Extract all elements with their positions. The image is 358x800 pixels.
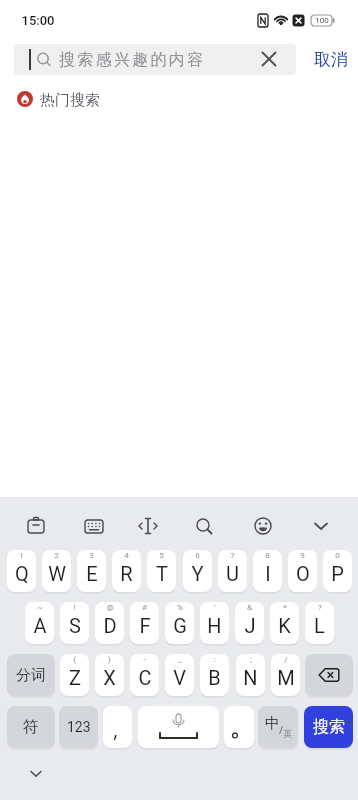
button[interactable] (134, 512, 162, 540)
button[interactable]: 4 (112, 550, 141, 592)
staticText: & (247, 603, 252, 612)
button[interactable] (249, 512, 277, 540)
staticText: ! (73, 603, 76, 612)
button[interactable]: ) (95, 654, 124, 696)
button[interactable] (305, 654, 353, 696)
button[interactable]: 3 (77, 550, 106, 592)
button[interactable]: 5 (147, 550, 176, 592)
button[interactable]: % (165, 602, 194, 644)
staticText: : (214, 655, 216, 664)
button[interactable]: 搜索感兴趣的内容 (14, 44, 296, 75)
staticText: F (139, 614, 151, 637)
staticText: / (284, 655, 288, 664)
button[interactable]: ' (200, 602, 229, 644)
staticText: 搜索感兴趣的内容 (59, 50, 206, 70)
staticText: L (314, 614, 325, 637)
staticText: A (33, 614, 47, 637)
button[interactable]: 9 (288, 550, 317, 592)
staticText: ' (214, 603, 216, 612)
button[interactable]: 取消 (304, 44, 358, 75)
button[interactable]: 中 (258, 706, 298, 748)
staticText: N (243, 666, 258, 689)
button[interactable]: ! (60, 602, 89, 644)
button[interactable] (255, 45, 283, 73)
button[interactable]: 符 (7, 706, 55, 748)
staticText: 1 (19, 551, 24, 560)
staticText: U (226, 562, 239, 585)
staticText: Z (69, 666, 81, 689)
staticText: P (331, 562, 344, 585)
staticText: 123 (67, 719, 91, 735)
staticText: 3 (89, 551, 94, 560)
button[interactable]: / (271, 654, 300, 696)
button[interactable]: 0 (323, 550, 352, 592)
staticText: 9 (300, 551, 305, 560)
staticText: 取消 (314, 49, 348, 70)
staticText: 15:00 (21, 13, 55, 28)
staticText: B (208, 666, 221, 689)
button[interactable]: _ (165, 654, 194, 696)
button[interactable]: # (130, 602, 159, 644)
staticText: _ (178, 655, 182, 664)
button[interactable]: 2 (42, 550, 71, 592)
staticText: / (279, 722, 284, 737)
staticText: Y (191, 562, 204, 585)
staticText: 8 (265, 551, 270, 560)
staticText: 0 (335, 551, 340, 560)
button[interactable]: @ (95, 602, 124, 644)
staticText: 100 (315, 16, 329, 25)
staticText: R (120, 562, 133, 585)
staticText: * (283, 603, 287, 612)
button[interactable] (307, 512, 335, 540)
staticText: 符 (23, 717, 39, 737)
button[interactable] (138, 706, 219, 748)
staticText: S (69, 614, 81, 637)
button[interactable]: 分词 (7, 654, 55, 696)
staticText: M (277, 666, 295, 689)
staticText: G (173, 614, 187, 637)
staticText: I (265, 562, 271, 585)
button[interactable]: 123 (59, 706, 98, 748)
staticText: 英 (283, 728, 292, 739)
staticText: J (244, 614, 256, 637)
staticText: 6 (195, 551, 200, 560)
staticText: ~ (37, 603, 43, 612)
button[interactable]: ? (305, 602, 334, 644)
staticText: 4 (124, 551, 129, 560)
button[interactable]: * (270, 602, 299, 644)
staticText: ) (108, 655, 111, 664)
button[interactable] (80, 512, 108, 540)
button[interactable]: 1 (7, 550, 36, 592)
staticText: O (296, 562, 310, 585)
staticText: ( (73, 655, 76, 664)
staticText: % (177, 603, 183, 612)
staticText: 2 (54, 551, 59, 560)
staticText: , (113, 716, 119, 743)
button[interactable]: 6 (183, 550, 212, 592)
button[interactable]: & (235, 602, 264, 644)
staticText: @ (106, 603, 114, 612)
button[interactable]: 搜索 (304, 706, 353, 748)
staticText: 搜索 (313, 717, 345, 737)
staticText: H (207, 614, 222, 637)
button[interactable] (224, 706, 254, 748)
button[interactable]: ( (60, 654, 89, 696)
button[interactable]: - (130, 654, 159, 696)
button[interactable]: 7 (218, 550, 247, 592)
staticText: 7 (230, 551, 235, 560)
staticText: T (156, 562, 168, 585)
button[interactable] (22, 512, 50, 540)
button[interactable]: : (200, 654, 229, 696)
button[interactable]: ~ (25, 602, 54, 644)
button[interactable]: ; (236, 654, 265, 696)
button[interactable]: , (103, 706, 132, 748)
button[interactable] (190, 512, 218, 540)
staticText: E (86, 562, 98, 585)
button[interactable] (24, 762, 48, 786)
button[interactable]: 8 (253, 550, 282, 592)
staticText: Q (15, 562, 29, 585)
staticText: ? (318, 603, 322, 612)
staticText: ; (250, 655, 252, 664)
staticText: 5 (159, 551, 164, 560)
staticText: C (138, 666, 152, 689)
